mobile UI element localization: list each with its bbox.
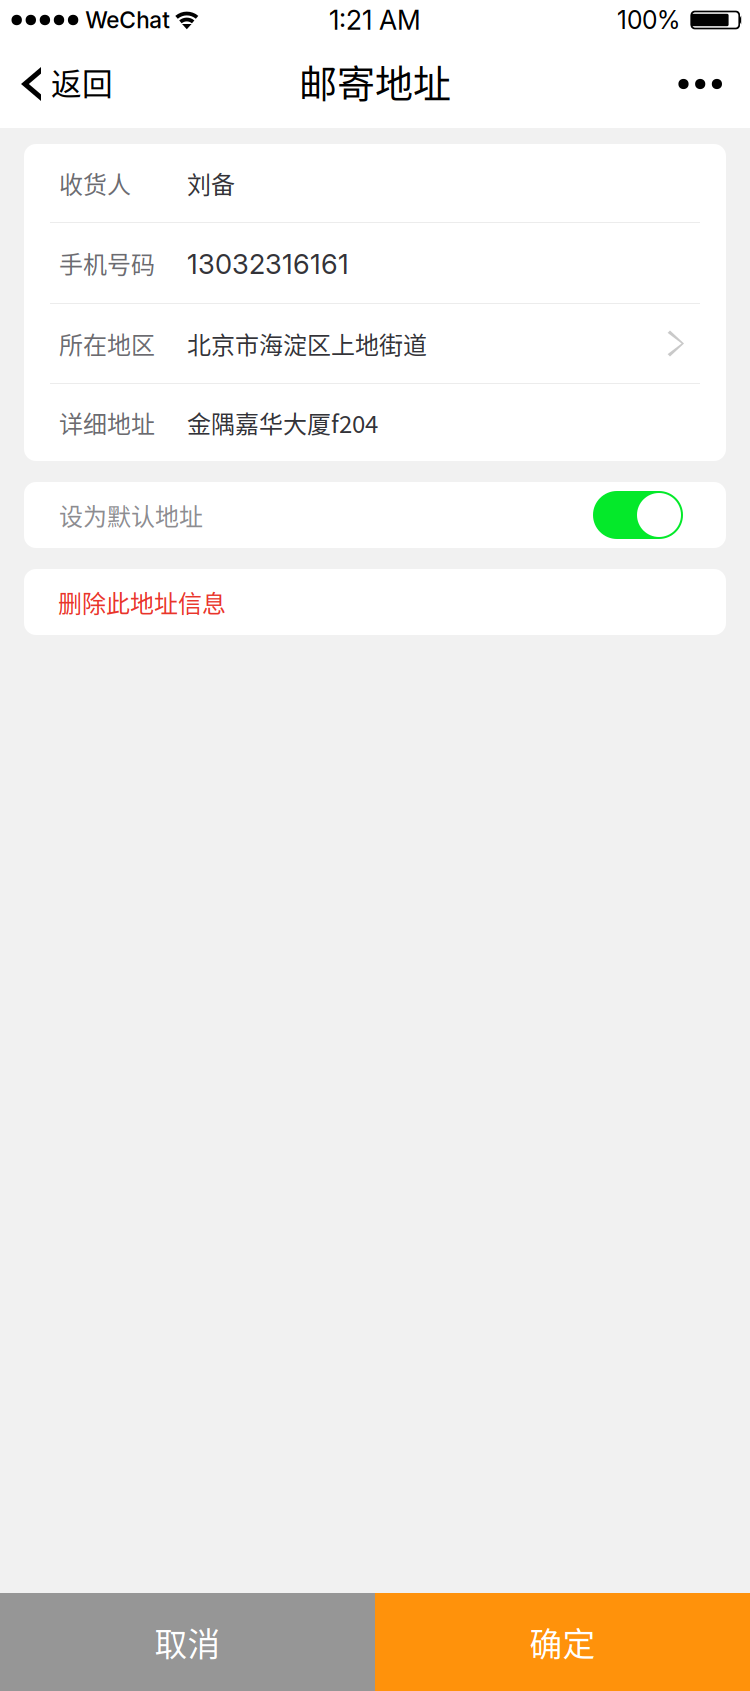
staticText: 100% xyxy=(617,5,680,35)
staticText: 返回 xyxy=(51,60,113,104)
staticText: WeChat xyxy=(85,6,170,34)
staticText: 1:21 AM xyxy=(329,4,421,36)
button[interactable]: 取消 xyxy=(0,1593,375,1691)
button[interactable]: 确定 xyxy=(375,1593,750,1691)
button[interactable]: 删除此地址信息 xyxy=(0,548,750,635)
staticText: 详细地址 xyxy=(59,405,155,440)
button[interactable]: 所在地区 xyxy=(24,304,726,383)
staticText: 设为默认地址 xyxy=(59,498,203,532)
staticText: 收货人 xyxy=(59,166,131,200)
staticText: 邮寄地址 xyxy=(299,53,451,108)
button[interactable]: 更多 xyxy=(652,40,750,128)
staticText: 取消 xyxy=(154,1618,220,1666)
staticText: 北京市海淀区上地街道 xyxy=(187,326,427,361)
staticText: 手机号码 xyxy=(59,246,155,280)
button[interactable]: 设为默认地址 xyxy=(593,491,683,539)
staticText: 删除此地址信息 xyxy=(58,585,226,619)
staticText: 13032316161 xyxy=(187,247,349,281)
staticText: 刘备 xyxy=(187,166,235,200)
staticText: 确定 xyxy=(529,1618,595,1666)
button[interactable]: 返回 xyxy=(0,40,131,128)
staticText: 所在地区 xyxy=(59,326,155,361)
staticText: 金隅嘉华大厦f204 xyxy=(187,405,378,440)
